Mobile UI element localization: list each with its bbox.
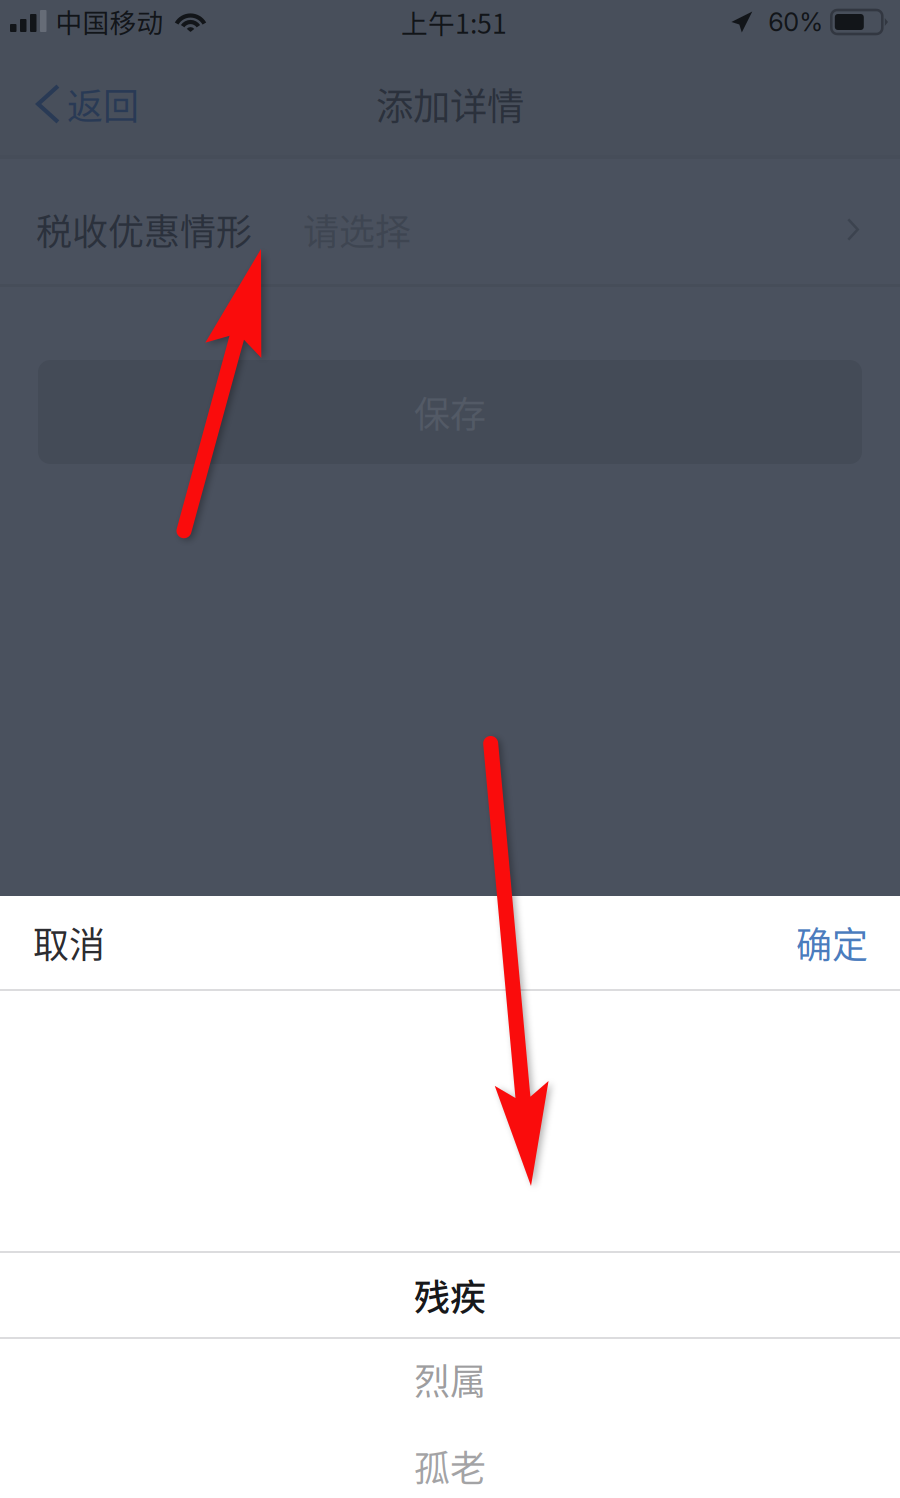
button[interactable]: 返回 [0,57,163,155]
button[interactable]: 烈属 [0,1336,900,1422]
staticText: 取消 [33,916,105,968]
staticText: 孤老 [414,1440,486,1492]
button[interactable]: 孤老 [0,1423,900,1498]
staticText: 返回 [67,78,139,130]
button[interactable]: 残疾 [0,1252,900,1338]
button[interactable]: 保存 [38,360,862,464]
staticText: 上午1:51 [401,3,507,41]
button[interactable]: 确定 [764,896,900,989]
staticText: 残疾 [414,1269,486,1321]
staticText: 确定 [796,916,868,968]
staticText: 烈属 [414,1353,486,1405]
staticText: 中国移动 [55,2,163,40]
staticText: 添加详情 [376,77,524,131]
staticText: 60% [768,7,823,37]
button[interactable]: 取消 [0,896,138,989]
staticText: 请选择 [303,203,411,255]
staticText: 税收优惠情形 [36,203,252,255]
staticText: 保存 [414,386,486,438]
button[interactable]: 税收优惠情形 [0,159,900,284]
